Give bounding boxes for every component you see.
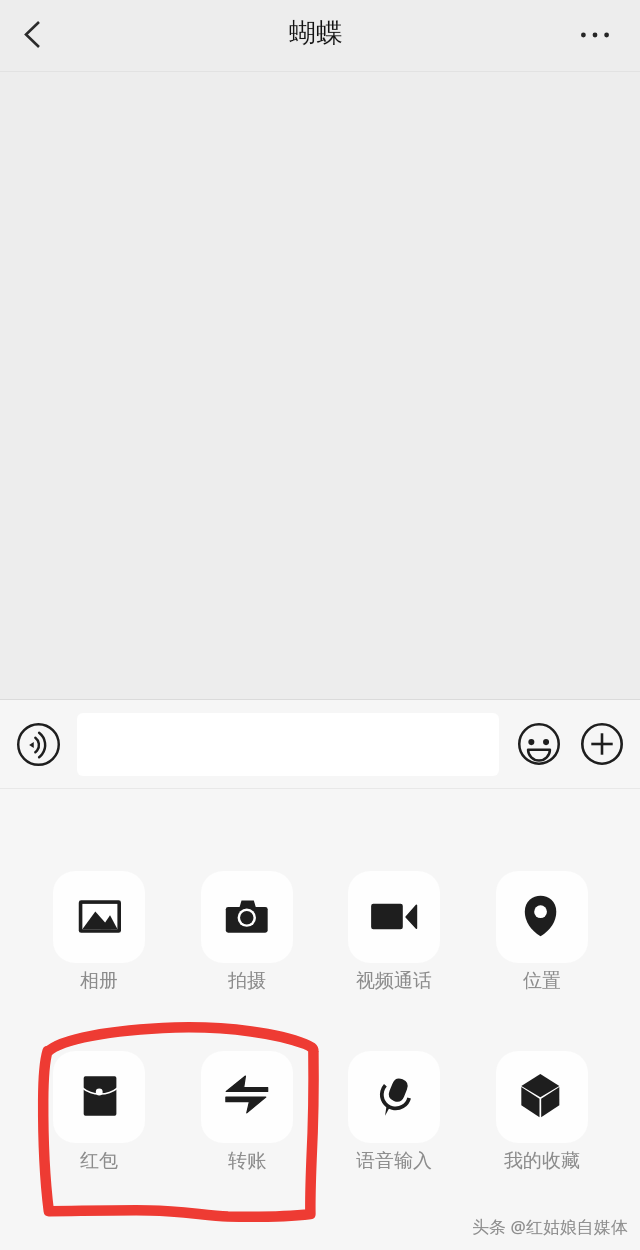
staticText: 头条 @红姑娘自媒体 <box>472 1215 628 1238</box>
button[interactable]: Voice message <box>9 715 67 773</box>
staticText: 我的收藏 <box>504 1149 580 1173</box>
staticText: 转账 <box>228 1149 266 1173</box>
staticText: 视频通话 <box>356 969 432 993</box>
staticText: 语音输入 <box>356 1149 432 1173</box>
button[interactable]: 语音输入 <box>338 1051 450 1171</box>
button[interactable]: Back <box>5 7 60 61</box>
button[interactable]: 位置 <box>486 871 598 991</box>
button[interactable]: 我的收藏 <box>486 1051 598 1171</box>
button[interactable]: Emoji <box>510 715 568 773</box>
staticText: 拍摄 <box>228 969 266 993</box>
staticText: 蝴蝶 <box>289 16 343 50</box>
button[interactable]: 红包 <box>43 1051 155 1171</box>
staticText: 相册 <box>80 969 118 993</box>
button[interactable]: More actions <box>573 715 631 773</box>
staticText: 红包 <box>80 1149 118 1173</box>
button[interactable]: 视频通话 <box>338 871 450 991</box>
button[interactable]: 相册 <box>43 871 155 991</box>
staticText: 位置 <box>523 969 561 993</box>
button[interactable]: 拍摄 <box>191 871 303 991</box>
button[interactable]: More options <box>567 8 622 62</box>
button[interactable]: 转账 <box>191 1051 303 1171</box>
